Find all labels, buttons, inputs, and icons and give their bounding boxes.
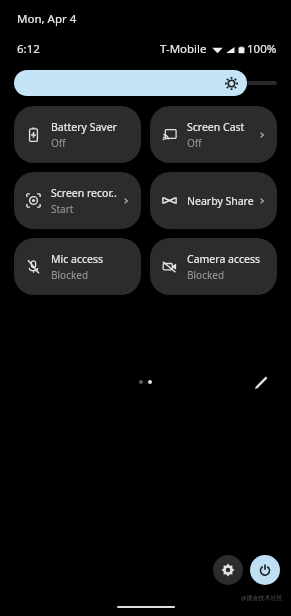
button[interactable]: Battery Saver (14, 106, 141, 163)
staticText: Screen recor.. (51, 186, 117, 200)
button[interactable]: Settings (213, 555, 243, 585)
button[interactable] (14, 70, 277, 96)
button[interactable]: Screen recor.. (14, 172, 141, 229)
button[interactable]: Edit tiles (249, 370, 273, 394)
button[interactable]: Power (250, 555, 280, 585)
staticText: 6:12 (17, 41, 40, 57)
staticText: Nearby Share (187, 194, 254, 208)
staticText: Off (51, 136, 66, 150)
staticText: Mic access (51, 252, 103, 266)
button[interactable]: Camera access (150, 238, 277, 295)
staticText: Blocked (187, 268, 225, 282)
staticText: 100% (247, 41, 277, 57)
staticText: Camera access (187, 252, 260, 266)
staticText: @掘金技术社区 (241, 594, 283, 602)
button[interactable]: Screen Cast (150, 106, 277, 163)
staticText: T-Mobile (160, 41, 207, 57)
staticText: Start (51, 202, 74, 216)
staticText: Mon, Apr 4 (17, 11, 77, 27)
staticText: Battery Saver (51, 120, 117, 134)
staticText: Off (187, 136, 202, 150)
button[interactable]: Mic access (14, 238, 141, 295)
staticText: Blocked (51, 268, 89, 282)
button[interactable]: Nearby Share (150, 172, 277, 229)
staticText: Screen Cast (187, 120, 245, 134)
